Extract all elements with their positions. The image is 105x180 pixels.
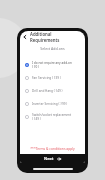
staticText: Select Add-ons	[20, 46, 85, 51]
staticText: Next	[44, 156, 54, 161]
button[interactable]: Next	[20, 154, 85, 163]
button[interactable]: Drill and Hang ( ₹49 )	[20, 84, 85, 97]
staticText: Fan Servicing ( ₹39 )	[32, 76, 61, 80]
staticText: Additional Requirements	[30, 31, 75, 43]
staticText: ***Terms & conditions apply	[20, 146, 85, 150]
staticText: Drill and Hang ( ₹49 )	[32, 89, 63, 93]
button[interactable]: Switch/socket replacement ( ₹49 )	[20, 110, 85, 123]
button[interactable]: I do not require any add-on ( ₹0 )	[20, 58, 85, 71]
button[interactable]: Fan Servicing ( ₹39 )	[20, 71, 85, 84]
button[interactable]: Inverter Servicing ( ₹99 )	[20, 97, 85, 110]
staticText: Inverter Servicing ( ₹99 )	[32, 102, 68, 106]
staticText: I do not require any add-on ( ₹0 )	[32, 61, 72, 69]
staticText: Switch/socket replacement ( ₹49 )	[32, 113, 72, 121]
button[interactable]: Back	[20, 32, 30, 42]
